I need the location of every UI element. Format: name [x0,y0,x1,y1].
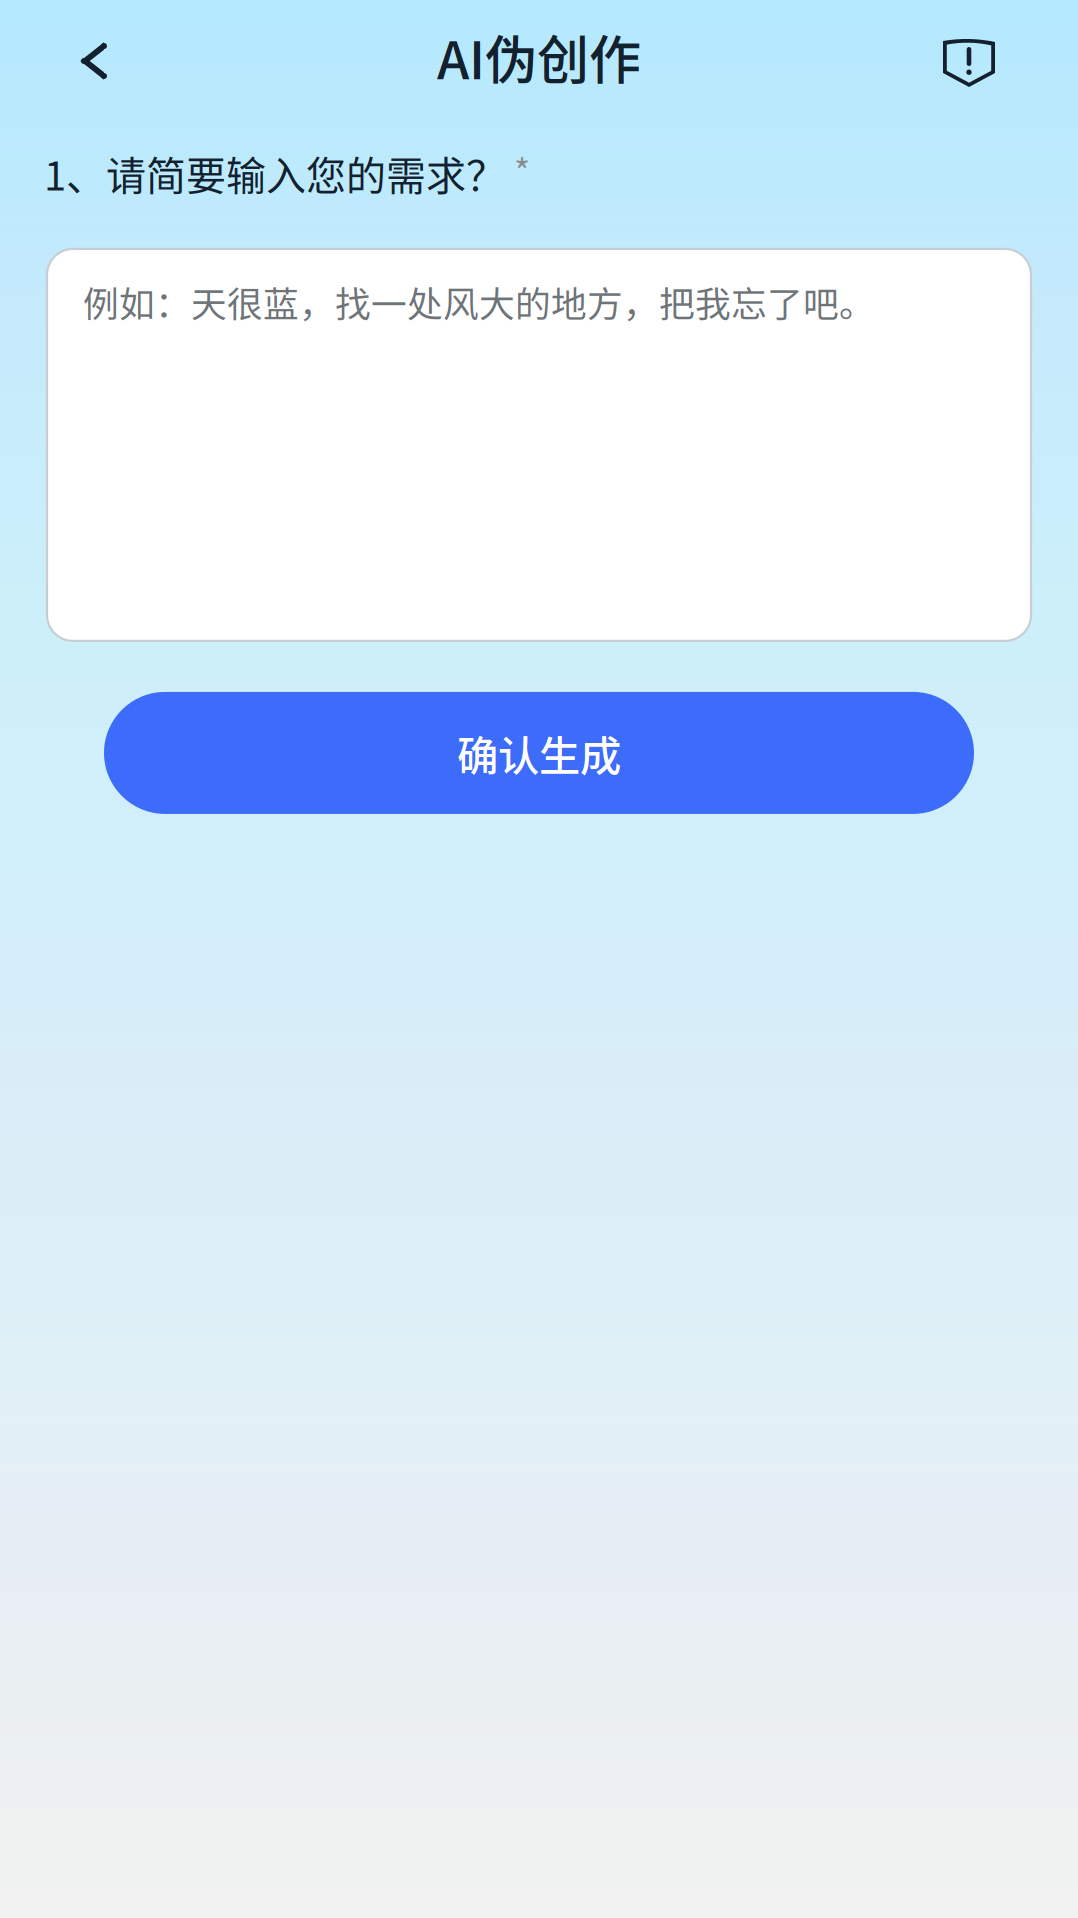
staticText: * [514,144,530,194]
button[interactable]: Back [81,0,153,116]
staticText: 确认生成 [457,723,621,783]
staticText: AI伪创作 [437,19,641,94]
button[interactable]: 确认生成 [104,692,974,814]
staticText: 例如：天很蓝，找一处风大的地方，把我忘了吧。 [83,276,875,328]
button[interactable]: 例如：天很蓝，找一处风大的地方，把我忘了吧。 [47,249,1031,641]
button[interactable]: Notice [915,0,997,117]
staticText: 1、请简要输入您的需求？ [44,144,506,202]
